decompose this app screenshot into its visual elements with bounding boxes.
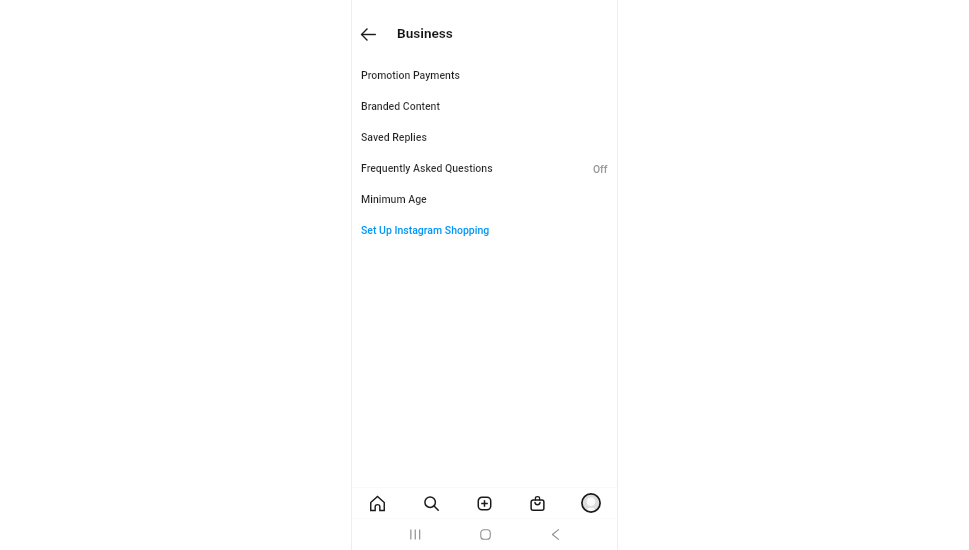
staticText: Branded Content [361,100,440,112]
staticText: Minimum Age [361,193,427,205]
button[interactable]: Saved Replies [351,121,618,152]
button[interactable]: Home [450,519,520,550]
button[interactable]: Home [350,488,404,518]
button[interactable]: Shop [511,488,564,518]
button[interactable]: Branded Content [351,90,618,121]
button[interactable]: Minimum Age [351,183,618,214]
staticText: Saved Replies [361,131,427,143]
button[interactable]: Frequently Asked Questions [351,152,618,183]
button[interactable]: Profile [564,488,617,518]
staticText: Set Up Instagram Shopping [361,224,490,236]
button[interactable]: Back [354,20,382,48]
staticText: Off [593,163,608,175]
staticText: Promotion Payments [361,69,460,81]
staticText: Frequently Asked Questions [361,162,493,174]
button[interactable]: Promotion Payments [351,59,618,90]
button[interactable]: Recent apps [381,519,450,550]
button[interactable]: Back [520,519,590,550]
button[interactable]: Search [404,488,458,518]
button[interactable]: Set Up Instagram Shopping [351,214,618,245]
staticText: Business [397,25,453,41]
button[interactable]: Create [458,488,511,518]
